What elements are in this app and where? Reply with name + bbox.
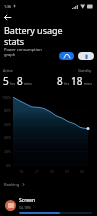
staticText: 5: [3, 74, 9, 88]
staticText: 0%: [6, 163, 11, 168]
staticText: 1:36: [4, 4, 12, 9]
staticText: 54.18%: [19, 205, 31, 210]
button[interactable]: Battery level view: [78, 52, 94, 60]
staticText: 18: [19, 169, 24, 174]
staticText: mins: [83, 81, 92, 86]
staticText: Ranking: [4, 182, 20, 187]
staticText: 00: [50, 169, 55, 174]
staticText: 40%: [4, 135, 11, 140]
button[interactable]: Ranking: [4, 182, 25, 187]
staticText: hrs: [63, 81, 71, 86]
staticText: 80%: [4, 108, 11, 113]
staticText: 8: [57, 74, 63, 88]
button[interactable]: Graph view: [59, 52, 74, 60]
staticText: Active: [3, 68, 13, 73]
staticText: 03: [65, 169, 70, 174]
staticText: Power consumption graph: [4, 47, 44, 57]
staticText: 21: [35, 169, 40, 174]
button[interactable]: Screen: [0, 194, 97, 216]
staticText: 06: [80, 169, 85, 174]
staticText: 60%: [4, 122, 11, 127]
staticText: Battery usage stats: [4, 24, 68, 47]
staticText: 20%: [4, 149, 11, 154]
staticText: 100%: [2, 95, 11, 100]
staticText: 8: [17, 74, 23, 88]
button[interactable]: Back: [1, 11, 14, 24]
staticText: Screen: [19, 197, 36, 204]
staticText: mins: [23, 81, 32, 86]
staticText: Standby: [78, 68, 92, 73]
staticText: hrs: [9, 81, 17, 86]
staticText: 18: [71, 74, 83, 88]
